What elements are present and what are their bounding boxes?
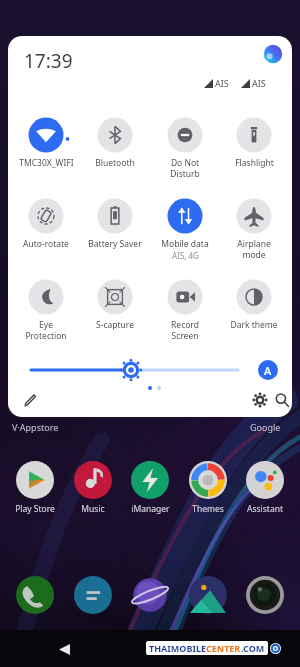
button[interactable]: Camera [241,574,289,616]
staticText: Auto-rotate [23,238,69,250]
staticText: Eye Protection [25,319,67,341]
button[interactable]: Airplane mode [222,198,286,260]
staticText: Themes [192,503,224,515]
staticText: Do Not Disturb [170,157,200,179]
button[interactable]: A [258,360,278,380]
staticText: Bluetooth [95,157,135,169]
staticText: Music [81,503,105,515]
button[interactable]: Themes [184,461,232,515]
button[interactable]: Eye Protection [14,279,78,341]
button[interactable]: S-capture [83,279,147,331]
button[interactable]: Bluetooth [83,117,147,169]
button[interactable]: Edit [18,388,42,412]
staticText: iManager [131,503,170,515]
staticText: Google [250,421,281,433]
button[interactable]: Dark theme [222,279,286,331]
staticText: Dark theme [230,319,278,331]
button[interactable]: Search [270,388,292,412]
staticText: 17:39 [24,48,73,74]
button[interactable]: Battery Saver [83,198,147,250]
staticText: AIS, 4G [172,250,199,261]
staticText: Flashlight [235,157,274,169]
button[interactable]: Back [55,640,73,658]
button[interactable]: Mobile data [153,198,217,261]
button[interactable]: Brightness [24,357,242,383]
staticText: THAIMOBILE [149,642,206,654]
button[interactable]: Music [69,461,117,515]
staticText: Battery Saver [88,238,142,250]
button[interactable]: Play Store [11,461,59,515]
button[interactable]: Gallery [184,574,232,616]
staticText: .COM [241,642,265,654]
button[interactable]: Account [263,44,283,64]
button[interactable]: Messages [69,574,117,616]
staticText: CENTER [206,642,241,654]
button[interactable]: Record Screen [153,279,217,341]
button[interactable]: iManager [126,461,174,515]
staticText: AIS [252,77,266,89]
staticText: Record Screen [171,319,199,341]
button[interactable]: Settings [248,388,272,412]
button[interactable]: Auto-rotate [14,198,78,250]
staticText: A [264,363,272,378]
button[interactable]: Do Not Disturb [153,117,217,179]
button[interactable]: Flashlight [222,117,286,169]
staticText: Play Store [15,503,55,515]
button[interactable]: Phone [11,574,59,616]
staticText: Mobile data [161,238,209,250]
button[interactable]: Assistant [241,461,289,515]
staticText: V·Appstore [12,421,59,433]
staticText: AIS [215,77,229,89]
staticText: TMC30X_WIFI [19,157,74,169]
button[interactable]: Browser [126,574,174,616]
button[interactable]: TMC30X_WIFI [14,117,78,169]
staticText: Airplane mode [237,238,271,260]
staticText: S-capture [96,319,134,331]
staticText: Assistant [247,503,283,515]
